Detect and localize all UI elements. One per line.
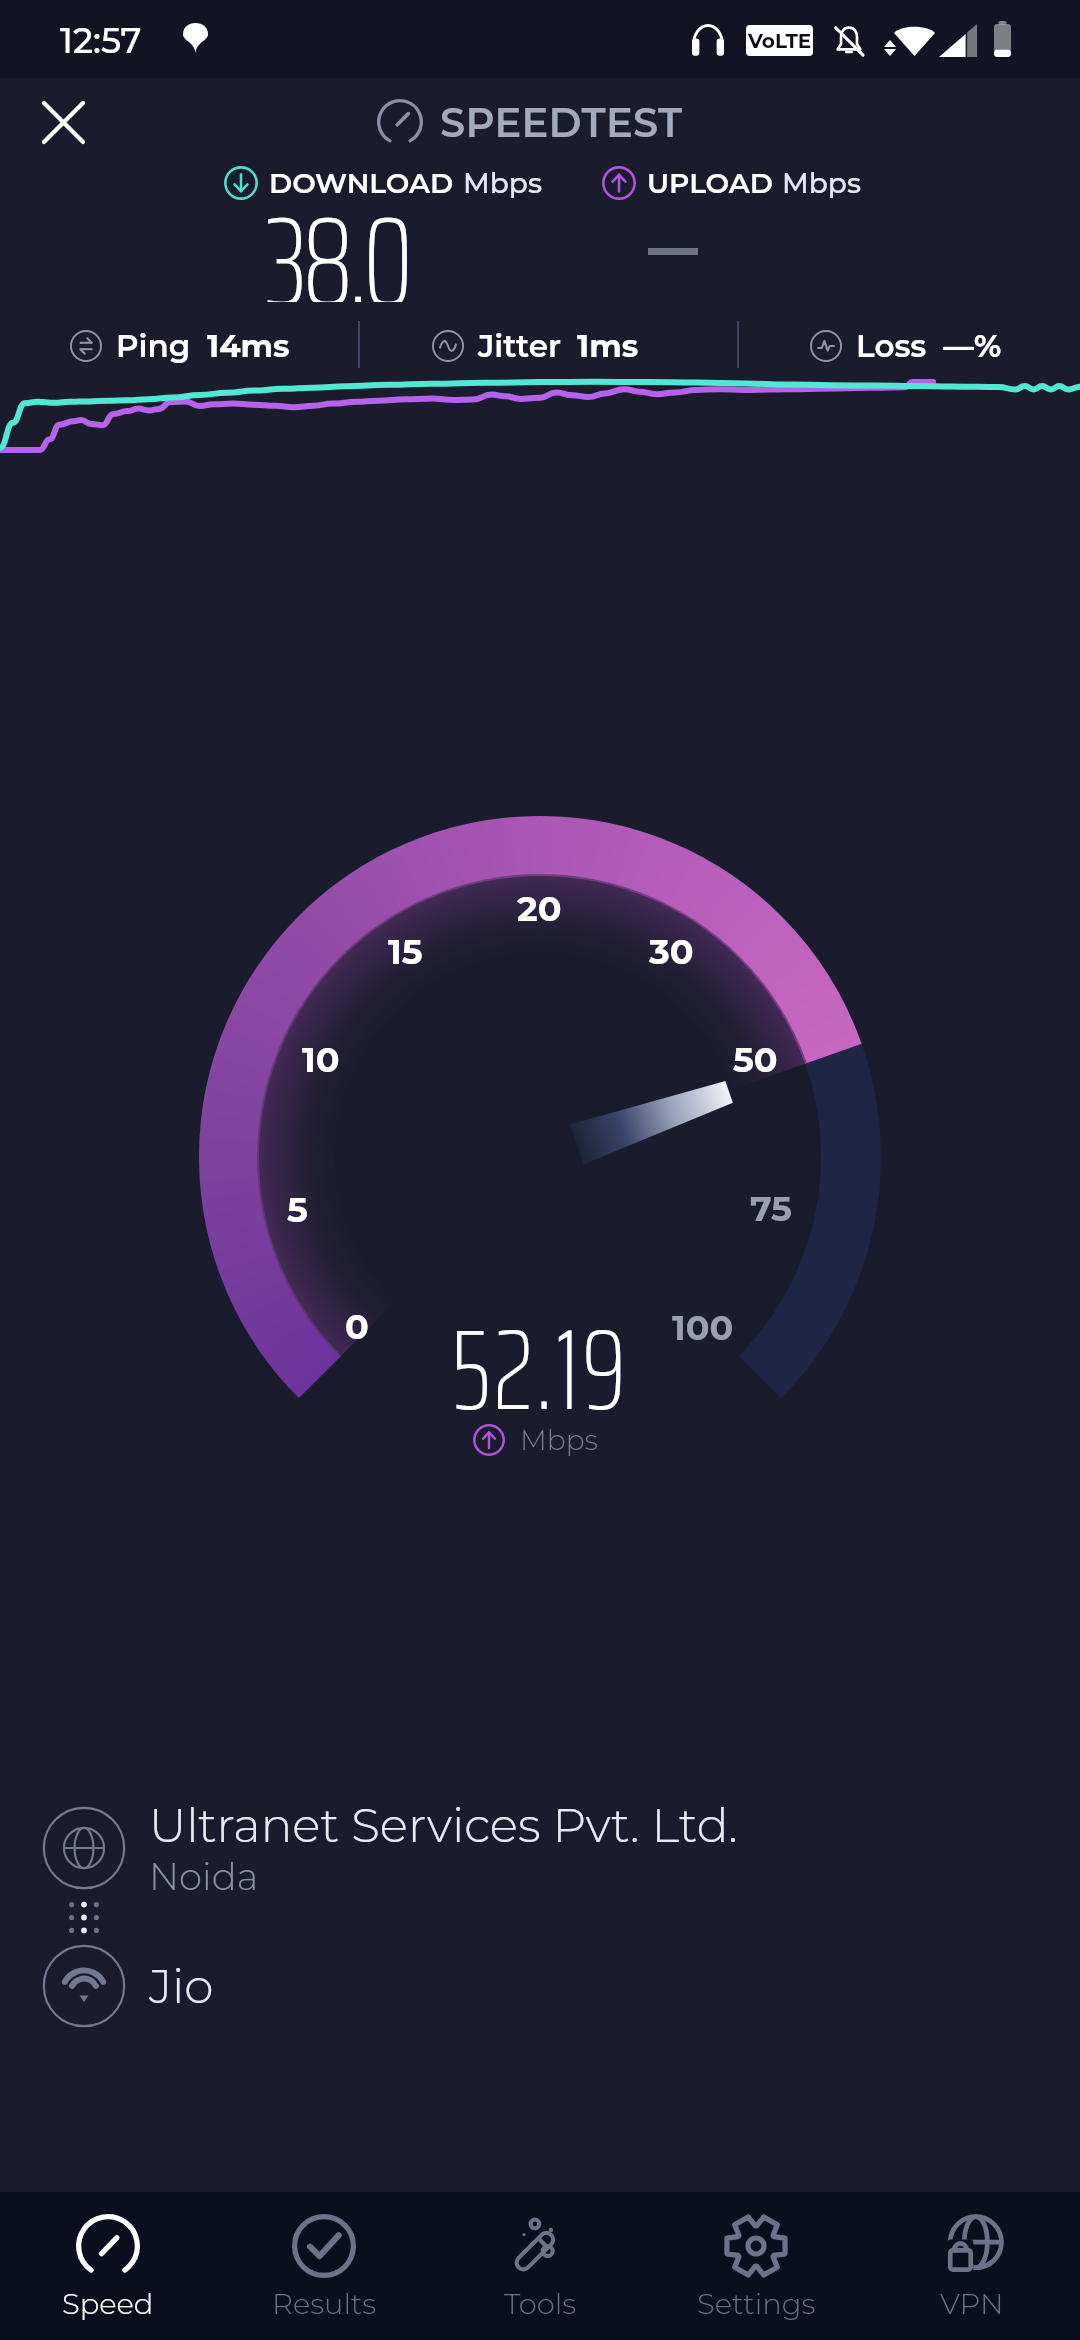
button[interactable]: VPN <box>864 2192 1080 2340</box>
staticText: 0 <box>345 1305 369 1348</box>
button[interactable]: Tools <box>432 2192 648 2340</box>
staticText: Jio <box>149 1958 214 2015</box>
staticText: VoLTE <box>748 29 812 53</box>
staticText: Ping <box>116 327 191 365</box>
staticText: Tools <box>504 2286 577 2321</box>
staticText: Speed <box>62 2286 154 2321</box>
staticText: 12:57 <box>60 19 142 62</box>
staticText: Jitter <box>478 327 561 365</box>
staticText: Mbps <box>520 1423 598 1457</box>
button[interactable]: Close <box>21 80 105 164</box>
button[interactable]: Ping <box>70 322 290 370</box>
staticText: VPN <box>940 2286 1004 2321</box>
staticText: SPEEDTEST <box>440 98 683 147</box>
staticText: 15 <box>388 930 423 973</box>
staticText: Loss <box>856 327 927 365</box>
staticText: Ultranet Services Pvt. Ltd. <box>149 1797 738 1854</box>
staticText: UPLOAD <box>647 166 773 200</box>
staticText: Mbps <box>782 166 861 200</box>
staticText: DOWNLOAD <box>269 166 454 200</box>
button[interactable]: Jitter <box>432 322 639 370</box>
staticText: 38.0 <box>265 162 409 302</box>
staticText: Mbps <box>463 166 542 200</box>
button[interactable]: Jio <box>43 1945 1080 2027</box>
staticText: Noida <box>149 1854 259 1899</box>
button[interactable]: Ultranet Services Pvt. Ltd. <box>43 1790 1080 1906</box>
staticText: 5 <box>287 1188 308 1231</box>
staticText: —% <box>943 327 1002 365</box>
staticText: 52.19 <box>451 1281 629 1421</box>
button[interactable]: Results <box>216 2192 432 2340</box>
staticText: 14ms <box>207 327 290 365</box>
button[interactable]: Settings <box>648 2192 864 2340</box>
staticText: Settings <box>697 2286 816 2321</box>
staticText: 1ms <box>577 327 639 365</box>
staticText: 30 <box>649 930 694 973</box>
button[interactable]: UPLOAD <box>602 160 861 206</box>
staticText: 20 <box>517 887 562 930</box>
staticText: 100 <box>672 1306 734 1349</box>
staticText: Results <box>272 2286 377 2321</box>
button[interactable]: DOWNLOAD <box>224 160 542 206</box>
staticText: 50 <box>733 1038 778 1081</box>
button[interactable]: SPEEDTEST <box>377 95 683 149</box>
staticText: 10 <box>302 1038 340 1081</box>
staticText: 75 <box>750 1187 792 1230</box>
button[interactable]: Speed <box>0 2192 216 2340</box>
button[interactable]: Loss <box>810 322 1002 370</box>
